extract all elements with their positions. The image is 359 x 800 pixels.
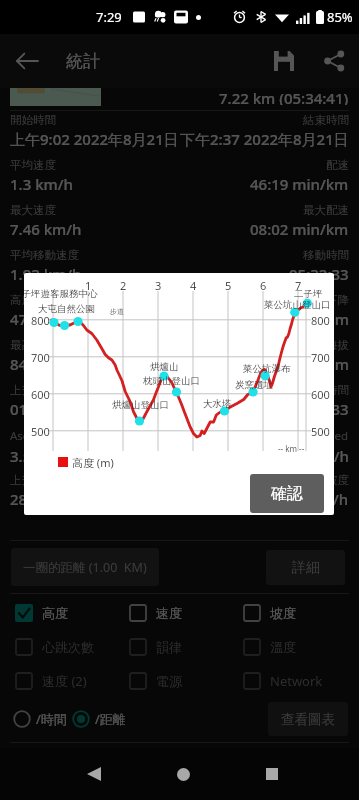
staticText: 05:32:33 [289,264,349,284]
staticText: 5 [225,278,232,293]
staticText: Ascent Speed [10,428,83,444]
staticText: 坡度 [270,605,296,621]
button[interactable]: 韻律 [128,633,183,661]
button[interactable]: Back [0,34,54,88]
staticText: 7:29 [96,8,122,26]
staticText: 3 [155,278,162,293]
staticText: -- km -- [278,443,305,454]
staticText: 菜公坑瀑布 [243,363,291,375]
button[interactable]: 速度 (2) [14,667,88,695]
staticText: 500 [311,424,330,439]
staticText: 菜公坑山登山口 [264,299,331,311]
staticText: 840 m [10,354,54,374]
staticText: 7 [295,278,302,293]
staticText: 511 m [305,354,349,374]
button[interactable]: /時間 [13,705,67,733]
staticText: 詳細 [292,559,320,577]
button[interactable]: 溫度 [242,633,297,661]
staticText: 二子坪遊客服務中心 [24,288,98,300]
staticText: 速度 [156,605,182,621]
staticText: 700 [311,350,330,365]
button[interactable]: Share [309,36,359,86]
staticText: 500 [31,424,50,439]
staticText: 大水塔 [203,398,232,410]
staticText: 7.46 km/h [10,219,82,239]
staticText: 1 [85,278,92,293]
staticText: 466 m [305,309,349,329]
staticText: 高度 [42,605,68,621]
button[interactable]: Save [259,36,309,86]
staticText: 步道 [110,307,124,316]
button[interactable]: Home [162,753,204,795]
button[interactable]: 確認 [250,474,324,513]
staticText: 高度上升 [10,293,56,307]
button[interactable]: 一圈的距離 (1.00 KM) [11,548,159,586]
staticText: 600 [31,387,50,402]
staticText: 7.22 km (05:34:41) [219,88,349,105]
staticText: 電源 [156,673,182,689]
staticText: 上午9:02 2022年8月21日 [10,129,179,149]
staticText: 炭窯遺址 [235,379,273,391]
staticText: 01:43:21 [10,399,70,419]
staticText: 下午2:37 2022年8月21日 [180,129,349,149]
staticText: 2 [120,278,127,293]
staticText: 心跳次數 [42,639,94,655]
button[interactable]: Network [242,667,324,695]
staticText: 下降坡度 [303,473,349,487]
staticText: 01:26:33 [289,399,349,419]
staticText: 46:19 min/km [250,174,349,194]
staticText: 800 [31,313,50,328]
staticText: 查看圖表 [281,711,335,728]
staticText: 確認 [271,484,303,504]
button[interactable]: 詳細 [266,550,345,585]
staticText: 最低海拔 [303,338,349,352]
staticText: 700 [31,350,50,365]
staticText: 4 [190,278,197,293]
button[interactable]: Recent apps [251,753,293,795]
staticText: 470 m [10,309,54,329]
staticText: 最大配速 [303,203,349,217]
staticText: 烘爐山登山口 [112,399,169,411]
staticText: 2.9 km/h [286,446,349,466]
staticText: 結束時間 [303,113,349,127]
staticText: 上升時間 [10,383,56,397]
staticText: 1.3 km/h [10,174,73,194]
staticText: 速度 (2) [42,672,87,690]
staticText: 85% [327,8,353,26]
staticText: Descent Speed [268,428,349,444]
button[interactable]: 電源 [128,667,183,695]
staticText: 開始時間 [10,113,56,127]
button[interactable]: 查看圖表 [268,702,348,736]
button[interactable]: /距離 [72,705,126,733]
staticText: 1.92 km/h [10,264,82,284]
staticText: 烘爐山 [150,361,179,373]
button[interactable]: Back [73,753,115,795]
staticText: 二子坪 [294,288,323,300]
staticText: 800 [311,313,330,328]
staticText: 配速 [326,158,349,172]
staticText: 229.62 m/h [268,489,349,509]
button[interactable]: 坡度 [242,599,297,627]
staticText: 286.02 m/h [10,489,91,509]
button[interactable]: 心跳次數 [14,633,95,661]
staticText: /距離 [95,710,126,728]
staticText: 6 [260,278,267,293]
button[interactable]: 高度 [14,599,69,627]
staticText: 統計 [66,51,100,72]
staticText: 3.5 km/h [10,446,73,466]
staticText: 最高海拔 [10,338,56,352]
staticText: 高度 (m) [72,455,114,470]
staticText: 高度下降 [303,293,349,307]
staticText: 溫度 [270,639,296,655]
staticText: 平均速度 [10,158,56,172]
staticText: 600 [311,387,330,402]
staticText: 平均移動速度 [10,248,79,262]
staticText: Network [270,672,323,690]
staticText: 一圈的距離 (1.00 KM) [23,559,147,576]
staticText: 韻律 [156,639,182,655]
staticText: /時間 [36,710,67,728]
button[interactable]: 速度 [128,599,183,627]
staticText: 08:02 min/km [250,219,349,239]
staticText: 下降時間 [303,383,349,397]
staticText: 上升坡度 [10,473,56,487]
